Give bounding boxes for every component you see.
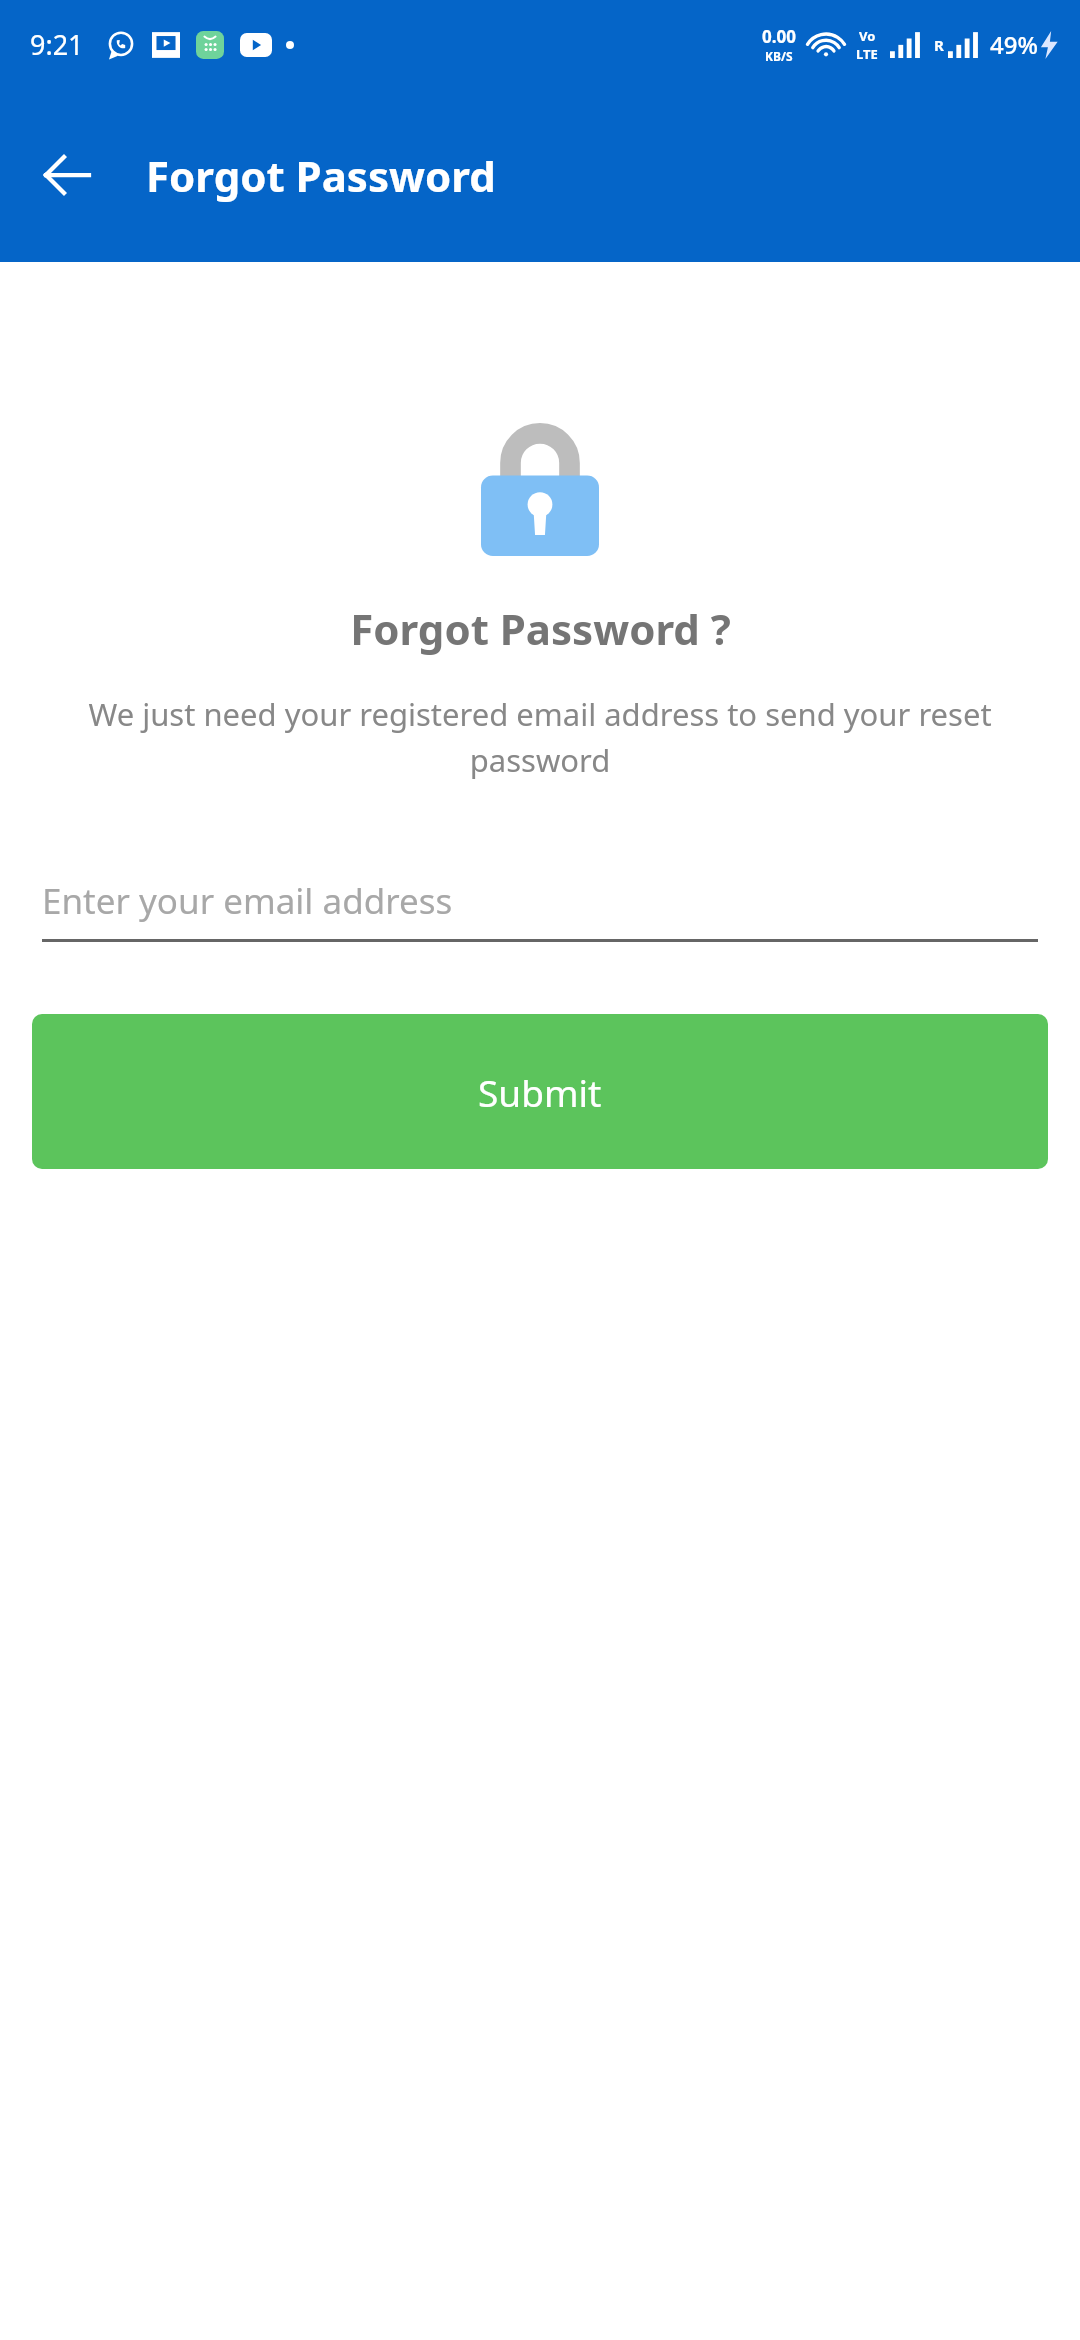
- staticText: Submit: [478, 1067, 602, 1117]
- staticText: 9:21: [30, 26, 84, 63]
- staticText: 0.00: [762, 25, 796, 48]
- staticText: Vo: [859, 27, 876, 45]
- button[interactable]: Back: [30, 138, 104, 212]
- button[interactable]: Submit: [32, 1014, 1048, 1169]
- staticText: 49%: [990, 28, 1038, 61]
- staticText: KB/S: [765, 48, 793, 64]
- staticText: R: [934, 35, 944, 55]
- button[interactable]: Enter your email address: [42, 877, 1038, 942]
- staticText: Enter your email address: [42, 877, 453, 925]
- staticText: LTE: [856, 45, 878, 63]
- staticText: We just need your registered email addre…: [30, 693, 1050, 781]
- staticText: Forgot Password ?: [350, 600, 731, 657]
- staticText: Forgot Password: [146, 147, 496, 204]
